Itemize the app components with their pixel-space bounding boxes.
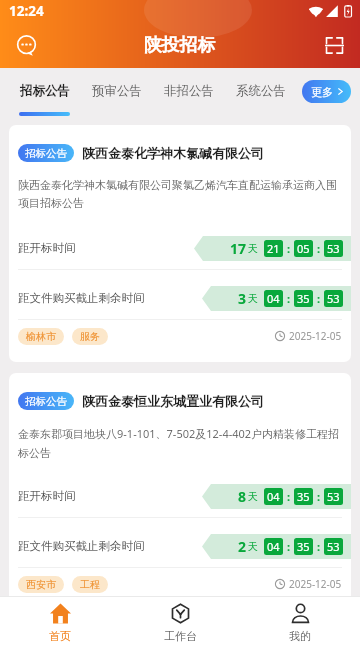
staticText: 首页	[49, 629, 71, 643]
button[interactable]: 更多	[302, 80, 351, 103]
staticText: 天	[248, 242, 258, 255]
staticText: 05	[297, 241, 310, 256]
staticText: 天	[248, 490, 258, 503]
staticText: :	[317, 489, 321, 504]
staticText: 2025-12-05	[289, 577, 342, 591]
staticText: 服务	[80, 330, 100, 343]
staticText: 陕西金泰恒业东城置业有限公司	[82, 393, 264, 409]
staticText: 17	[230, 239, 247, 258]
staticText: 非招公告	[164, 83, 214, 99]
staticText: 招标公告	[25, 395, 67, 408]
staticText: :	[287, 489, 291, 504]
button[interactable]: Messages	[12, 31, 40, 59]
staticText: 距开标时间	[18, 489, 76, 503]
staticText: 35	[297, 539, 310, 554]
staticText: 距文件购买截止剩余时间	[18, 291, 145, 305]
button[interactable]: Scan QR code	[320, 31, 348, 59]
button[interactable]: 我的	[240, 596, 360, 650]
staticText: 金泰东郡项目地块八9-1-101、7-502及12-4-402户内精装修工程招标…	[18, 426, 342, 460]
staticText: 陕投招标	[144, 34, 216, 56]
staticText: 21	[267, 241, 280, 256]
staticText: :	[287, 539, 291, 554]
staticText: :	[287, 291, 291, 306]
staticText: 招标公告	[25, 147, 67, 160]
staticText: :	[287, 241, 291, 256]
staticText: 04	[267, 489, 280, 504]
staticText: 招标公告	[20, 83, 70, 99]
staticText: 2025-12-05	[289, 329, 342, 343]
staticText: 工作台	[164, 629, 197, 643]
staticText: :	[317, 241, 321, 256]
staticText: 2	[238, 537, 247, 556]
button[interactable]: 首页	[0, 596, 120, 650]
staticText: 距开标时间	[18, 241, 76, 255]
staticText: :	[317, 291, 321, 306]
staticText: 工程	[80, 578, 100, 591]
button[interactable]: 系统公告	[236, 68, 286, 112]
button[interactable]: 招标公告	[19, 68, 70, 116]
staticText: 35	[297, 489, 310, 504]
button[interactable]: 招标公告	[9, 373, 351, 610]
staticText: 3	[238, 289, 247, 308]
staticText: 陕西金泰化学神木氯碱有限公司	[82, 145, 264, 161]
staticText: 35	[297, 291, 310, 306]
staticText: 更多	[311, 85, 333, 99]
staticText: 8	[238, 487, 247, 506]
staticText: 53	[327, 489, 340, 504]
staticText: 榆林市	[26, 330, 56, 343]
staticText: 预审公告	[92, 83, 142, 99]
staticText: 04	[267, 539, 280, 554]
staticText: 天	[248, 292, 258, 305]
staticText: 53	[327, 539, 340, 554]
button[interactable]: 招标公告	[9, 125, 351, 362]
button[interactable]: 预审公告	[92, 68, 142, 112]
staticText: 距文件购买截止剩余时间	[18, 539, 145, 553]
staticText: 53	[327, 241, 340, 256]
staticText: 陕西金泰化学神木氯碱有限公司聚氯乙烯汽车直配运输承运商入围项目招标公告	[18, 178, 342, 210]
staticText: 西安市	[26, 578, 56, 591]
staticText: 天	[248, 540, 258, 553]
staticText: :	[317, 539, 321, 554]
staticText: 系统公告	[236, 83, 286, 99]
staticText: 53	[327, 291, 340, 306]
staticText: 我的	[289, 629, 311, 643]
staticText: 04	[267, 291, 280, 306]
staticText: 12:24	[9, 2, 44, 20]
button[interactable]: 工作台	[120, 596, 240, 650]
button[interactable]: 非招公告	[164, 68, 214, 112]
